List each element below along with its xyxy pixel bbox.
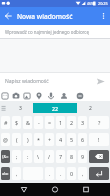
button[interactable]: 3 [78,116,87,129]
staticText: # [4,119,8,126]
button[interactable]: abc [1,167,10,180]
button[interactable]: 0 [67,167,76,180]
button[interactable]: \ [34,150,43,163]
staticText: 8 [70,153,74,160]
button[interactable]: 2 [78,103,102,113]
staticText: 4 [59,136,63,143]
staticText: 46% [87,1,94,6]
staticText: * [37,136,40,143]
button[interactable]: Space [1,116,10,129]
button[interactable]: 2 [67,116,76,129]
staticText: , [16,170,18,177]
staticText: ( [16,136,18,143]
button[interactable]: Home [48,183,62,196]
button[interactable]: Back [17,183,31,196]
button[interactable]: * [34,133,43,146]
button[interactable]: = [45,116,54,129]
button[interactable]: 5 [67,133,76,146]
button[interactable]: Attachment 5 [59,91,69,101]
button[interactable]: Attachment 2 [22,91,32,101]
staticText: 9 [81,153,85,160]
button[interactable]: @ [1,133,10,146]
staticText: . [60,170,62,177]
button[interactable]: Attachment 1 [11,91,21,101]
button[interactable]: $ [12,116,21,129]
button[interactable]: , [12,167,21,180]
staticText: \ [37,153,40,160]
button[interactable]: More options [97,7,110,25]
button[interactable]: & [23,116,32,129]
staticText: & [26,119,30,126]
button[interactable]: Backspace [89,150,109,163]
button[interactable]: - [34,116,43,129]
staticText: 2 [70,119,74,126]
staticText: ; [16,153,18,160]
button[interactable]: Recent apps [79,183,93,196]
button[interactable]: 9 [78,150,87,163]
staticText: 0 [70,170,74,177]
button[interactable]: Attachment 6 [75,91,85,101]
staticText: {&= [2,154,9,159]
staticText: Napisz wiadomość [5,78,49,85]
button[interactable]: 7 [56,150,65,163]
staticText: : [27,153,29,160]
button[interactable]: ? [89,116,109,129]
button[interactable]: ) [23,133,32,146]
button[interactable]: 8 [67,150,76,163]
button[interactable]: 1 [56,116,65,129]
button[interactable]: Enter [89,167,109,180]
staticText: 7 [59,153,63,160]
staticText: 6 [81,136,85,143]
staticText: - [38,119,40,126]
button[interactable]: , [78,167,87,180]
staticText: $ [15,119,19,126]
staticText: ! [98,136,100,143]
button[interactable]: 3 [8,103,32,113]
staticText: , [82,170,84,177]
button[interactable]: 4 [56,133,65,146]
button[interactable]: Send [92,73,110,90]
button[interactable]: . [45,167,54,180]
button[interactable]: . [56,167,65,180]
button[interactable]: Back [0,7,17,25]
staticText: / [48,153,51,160]
staticText: + [48,136,52,143]
button[interactable]: Attachment 4 [46,91,56,101]
staticText: Nowa wiadomość [17,12,73,21]
button[interactable]: Attachment 0 [0,91,10,101]
button[interactable]: ; [12,150,21,163]
staticText: 5 [70,136,74,143]
button[interactable]: 6 [78,133,87,146]
button[interactable]: / [45,150,54,163]
button[interactable]: + [45,133,54,146]
staticText: 22 [52,105,58,112]
staticText: = [48,119,52,126]
button[interactable]: Attachment 3 [34,91,44,101]
staticText: 3 [81,119,85,126]
staticText: 20:25 [98,1,108,6]
staticText: . [49,170,51,177]
staticText: 2 [89,105,92,112]
staticText: abc [2,171,9,176]
button[interactable]: 22 [33,103,77,113]
staticText: @ [3,136,8,143]
button[interactable]: : [23,150,32,163]
staticText: Wprowadź co najmniej jednego odbiorcę [5,29,89,35]
staticText: ? [98,119,101,126]
staticText: 1 [59,119,63,126]
button[interactable]: ( [12,133,21,146]
staticText: ) [27,136,29,143]
button[interactable]: ! [89,133,109,146]
button[interactable]: {&= [1,150,10,163]
staticText: 3 [19,105,22,112]
